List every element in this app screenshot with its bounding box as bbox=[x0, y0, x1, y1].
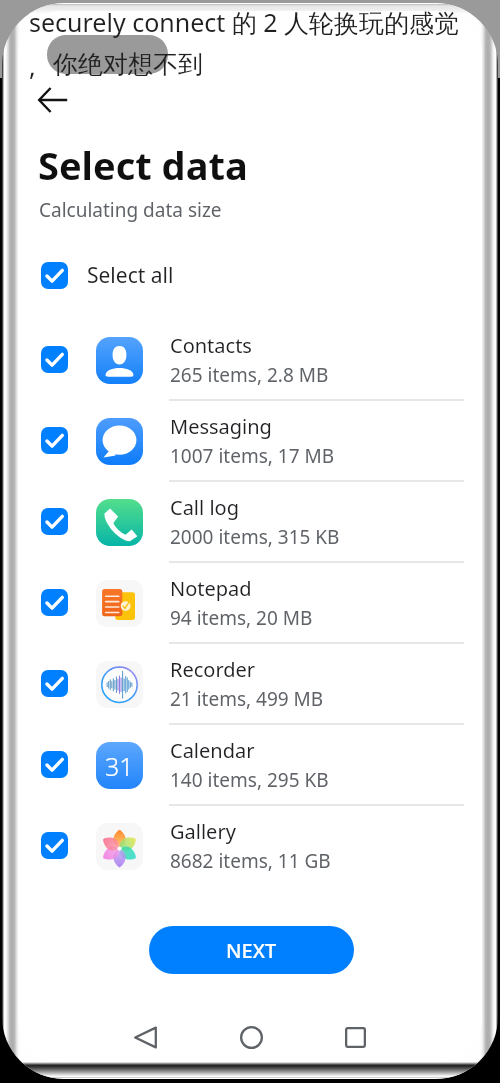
staticText: Call log bbox=[170, 494, 239, 521]
staticText: Notepad bbox=[170, 575, 252, 602]
button[interactable]: Recents bbox=[331, 1013, 379, 1061]
button[interactable]: Messaging bbox=[18, 400, 482, 481]
staticText: 31 bbox=[105, 749, 134, 783]
staticText: Gallery bbox=[170, 818, 236, 845]
button[interactable]: Contacts bbox=[18, 319, 482, 400]
staticText: 1007 items, 17 MB bbox=[170, 443, 335, 469]
button[interactable]: Back bbox=[121, 1013, 169, 1061]
staticText: Calculating data size bbox=[39, 197, 222, 223]
staticText: 8682 items, 11 GB bbox=[170, 848, 331, 874]
staticText: , bbox=[29, 49, 36, 83]
button[interactable]: Gallery bbox=[18, 805, 482, 886]
button[interactable]: 31 bbox=[18, 724, 482, 805]
button[interactable]: NEXT bbox=[149, 926, 354, 974]
staticText: 你绝对想不到 bbox=[53, 49, 203, 80]
staticText: 140 items, 295 KB bbox=[170, 767, 329, 793]
staticText: Contacts bbox=[170, 332, 252, 359]
button[interactable]: Back bbox=[27, 74, 79, 126]
staticText: NEXT bbox=[226, 937, 277, 964]
staticText: securely connect 的 2 人轮换玩的感觉 bbox=[29, 5, 460, 39]
staticText: 265 items, 2.8 MB bbox=[170, 362, 329, 388]
staticText: Recorder bbox=[170, 656, 256, 683]
staticText: Calendar bbox=[170, 737, 255, 764]
staticText: Select data bbox=[38, 139, 248, 191]
button[interactable]: Recorder bbox=[18, 643, 482, 724]
button[interactable]: Call log bbox=[18, 481, 482, 562]
staticText: Select all bbox=[87, 261, 174, 290]
button[interactable]: Home bbox=[227, 1013, 275, 1061]
staticText: 21 items, 499 MB bbox=[170, 686, 324, 712]
staticText: 2000 items, 315 KB bbox=[170, 524, 340, 550]
button[interactable]: Select all bbox=[18, 254, 482, 296]
staticText: 94 items, 20 MB bbox=[170, 605, 313, 631]
staticText: Messaging bbox=[170, 413, 272, 440]
button[interactable]: Notepad bbox=[18, 562, 482, 643]
